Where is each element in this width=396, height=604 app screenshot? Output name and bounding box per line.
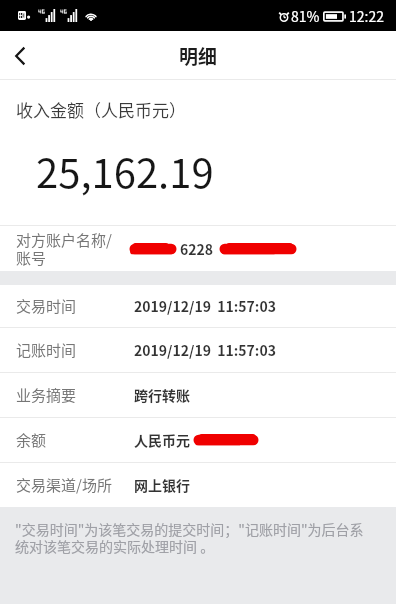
staticText: 12:22	[349, 6, 384, 26]
button[interactable]: 记账时间	[0, 328, 396, 372]
staticText: 2019/12/19 11:57:03	[134, 340, 276, 360]
button[interactable]: 交易时间	[0, 285, 396, 327]
button[interactable]: 余额	[0, 418, 396, 462]
staticText: 交易渠道/场所	[16, 474, 112, 496]
staticText: 2019/12/19 11:57:03	[134, 296, 276, 316]
staticText: 25,162.19	[36, 142, 214, 200]
staticText: 跨行转账	[134, 385, 190, 405]
staticText: 6228	[180, 239, 214, 259]
staticText: 余额	[16, 429, 47, 451]
button[interactable]: 业务摘要	[0, 373, 396, 417]
staticText: 业务摘要	[16, 384, 77, 406]
button[interactable]: 交易渠道/场所	[0, 463, 396, 507]
button[interactable]: 对方账户名称/ 账号	[0, 226, 396, 271]
staticText: 收入金额（人民币元）	[16, 97, 186, 122]
staticText: 交易时间	[16, 295, 77, 317]
staticText: 记账时间	[16, 339, 77, 361]
button[interactable]: Back	[0, 32, 40, 80]
staticText: 对方账户名称/ 账号	[16, 229, 112, 268]
staticText: 81%	[291, 6, 320, 26]
staticText: 网上银行	[134, 475, 190, 495]
staticText: "交易时间"为该笔交易的提交时间；"记账时间"为后台系统对该笔交易的实际处理时间…	[15, 519, 372, 556]
staticText: 人民币元	[134, 430, 190, 450]
staticText: 明细	[179, 42, 218, 70]
